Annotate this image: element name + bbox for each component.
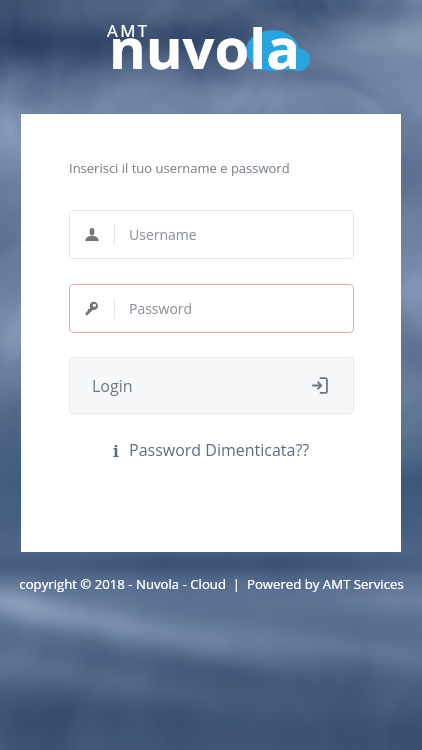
staticText: Password Dimenticata?? [129, 439, 310, 461]
staticText: AMT [107, 19, 150, 42]
staticText: Login [92, 375, 133, 397]
staticText: i [113, 439, 119, 462]
staticText: Username [129, 225, 197, 244]
staticText: nuvola [109, 9, 301, 85]
button[interactable]: Username [69, 210, 354, 259]
staticText: Inserisci il tuo username e password [69, 159, 290, 177]
staticText: copyright © 2018 - Nuvola - Cloud | Powe… [19, 575, 404, 593]
staticText: Password [129, 299, 193, 318]
button[interactable]: i [69, 434, 354, 466]
button[interactable]: Login [69, 357, 354, 414]
button[interactable]: Password [69, 284, 354, 333]
